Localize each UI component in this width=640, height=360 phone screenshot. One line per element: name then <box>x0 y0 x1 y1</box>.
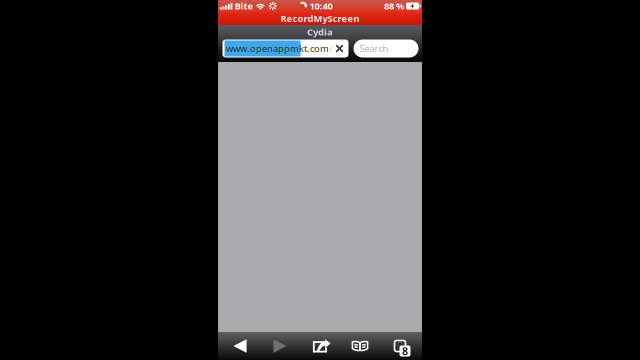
button[interactable]: Back <box>220 332 260 360</box>
button[interactable]: Share <box>300 332 340 360</box>
staticText: Bite <box>234 0 253 12</box>
staticText: www.openappmkt.com <box>226 42 329 55</box>
staticText: Cydia <box>307 26 333 38</box>
button[interactable]: Tabs <box>380 332 420 360</box>
staticText: 8 <box>402 344 408 358</box>
button[interactable]: Forward <box>260 332 300 360</box>
staticText: Search <box>359 42 388 55</box>
button[interactable]: Search <box>353 39 418 57</box>
staticText: 10:40 <box>309 0 332 12</box>
button[interactable]: Clear text <box>330 39 348 57</box>
staticText: / <box>329 42 332 55</box>
staticText: RecordMyScreen <box>280 12 359 25</box>
button[interactable]: Bookmarks <box>340 332 380 360</box>
staticText: 88 % <box>384 0 404 12</box>
